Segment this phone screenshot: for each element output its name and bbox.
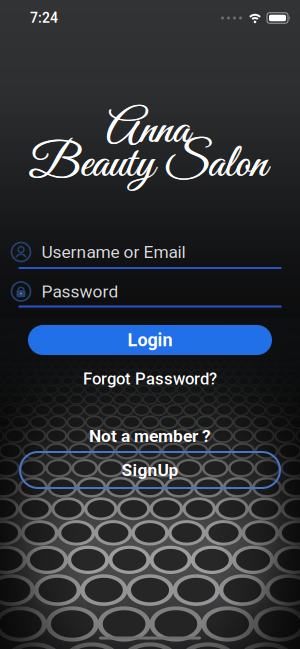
staticText: Beauty Salon	[29, 135, 267, 195]
button[interactable]: Forgot Password?	[83, 369, 217, 388]
staticText: Anna	[107, 101, 190, 161]
staticText: Not a member ?	[89, 426, 211, 446]
staticText: Forgot Password?	[83, 369, 217, 388]
button[interactable]: Login	[28, 325, 272, 355]
staticText: Password	[41, 281, 118, 302]
staticText: Login	[127, 329, 172, 351]
button[interactable]: SignUp	[20, 452, 280, 488]
staticText: Anna	[106, 101, 189, 161]
staticText: 7:24	[30, 10, 58, 26]
staticText: SignUp	[121, 460, 178, 480]
staticText: Username or Email	[41, 242, 185, 262]
staticText: Beauty Salon	[28, 135, 266, 195]
